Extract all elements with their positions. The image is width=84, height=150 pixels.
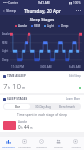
staticText: 0: [18, 124, 21, 130]
staticText: h: [21, 126, 23, 130]
button[interactable]: Sleep: [0, 7, 20, 14]
staticText: m: [30, 126, 33, 130]
staticText: TIME ASLEEP: [7, 74, 26, 78]
staticText: Bar: [15, 105, 20, 109]
staticText: Awake: [18, 24, 28, 28]
button[interactable]: 30-Day Avg: [30, 104, 55, 109]
staticText: 6:45 AM: [69, 65, 81, 69]
staticText: m: [22, 85, 26, 90]
staticText: Thursday, 20 Apr: [24, 8, 61, 14]
button[interactable]: Benchmark: [55, 104, 80, 109]
staticText: 30-Day Avg: [35, 105, 51, 109]
button[interactable]: Bar: [4, 104, 30, 109]
button[interactable]: Friends: [50, 137, 67, 150]
button[interactable]: Challenges: [16, 137, 33, 150]
staticText: 3:00 AM: [40, 65, 52, 69]
staticText: REM: [2, 41, 8, 45]
staticText: •••• Carrier: [3, 1, 19, 5]
staticText: Light: [47, 24, 55, 28]
staticText: 7: [3, 80, 8, 91]
staticText: 9:41 AM: [38, 1, 50, 5]
staticText: Sleep: [6, 8, 17, 13]
staticText: Account: [71, 145, 81, 148]
staticText: Awake: [18, 120, 28, 124]
staticText: Friends: [54, 145, 63, 148]
staticText: Light: [2, 49, 9, 53]
staticText: ▮▮ 100%: [69, 1, 81, 5]
staticText: Dashboard: [2, 145, 15, 148]
button[interactable]: Guidance: [33, 137, 50, 150]
staticText: Time spent in each stage of sleep: [3, 113, 81, 117]
staticText: Benchmark: [59, 105, 76, 109]
staticText: REM: [34, 24, 41, 28]
staticText: Guidance: [36, 145, 47, 148]
staticText: Sleep Stages: [0, 17, 84, 22]
staticText: 10: [12, 80, 22, 91]
button[interactable]: Edit Sleep: [69, 74, 81, 78]
staticText: Awake: [2, 32, 10, 36]
staticText: 11:34 PM: [11, 65, 24, 69]
button[interactable]: More options: [73, 8, 84, 13]
button[interactable]: Dashboard: [0, 137, 16, 150]
staticText: h: [8, 85, 11, 90]
button[interactable]: TIME ASLEEP: [0, 72, 84, 93]
staticText: SLEEP STAGES: [7, 97, 28, 101]
staticText: Deep: [61, 24, 69, 28]
staticText: 44: [24, 124, 30, 130]
staticText: Deep: [2, 58, 9, 62]
staticText: Challenges: [18, 145, 31, 148]
button[interactable]: Learn More: [66, 97, 81, 101]
button[interactable]: Account: [67, 137, 84, 150]
